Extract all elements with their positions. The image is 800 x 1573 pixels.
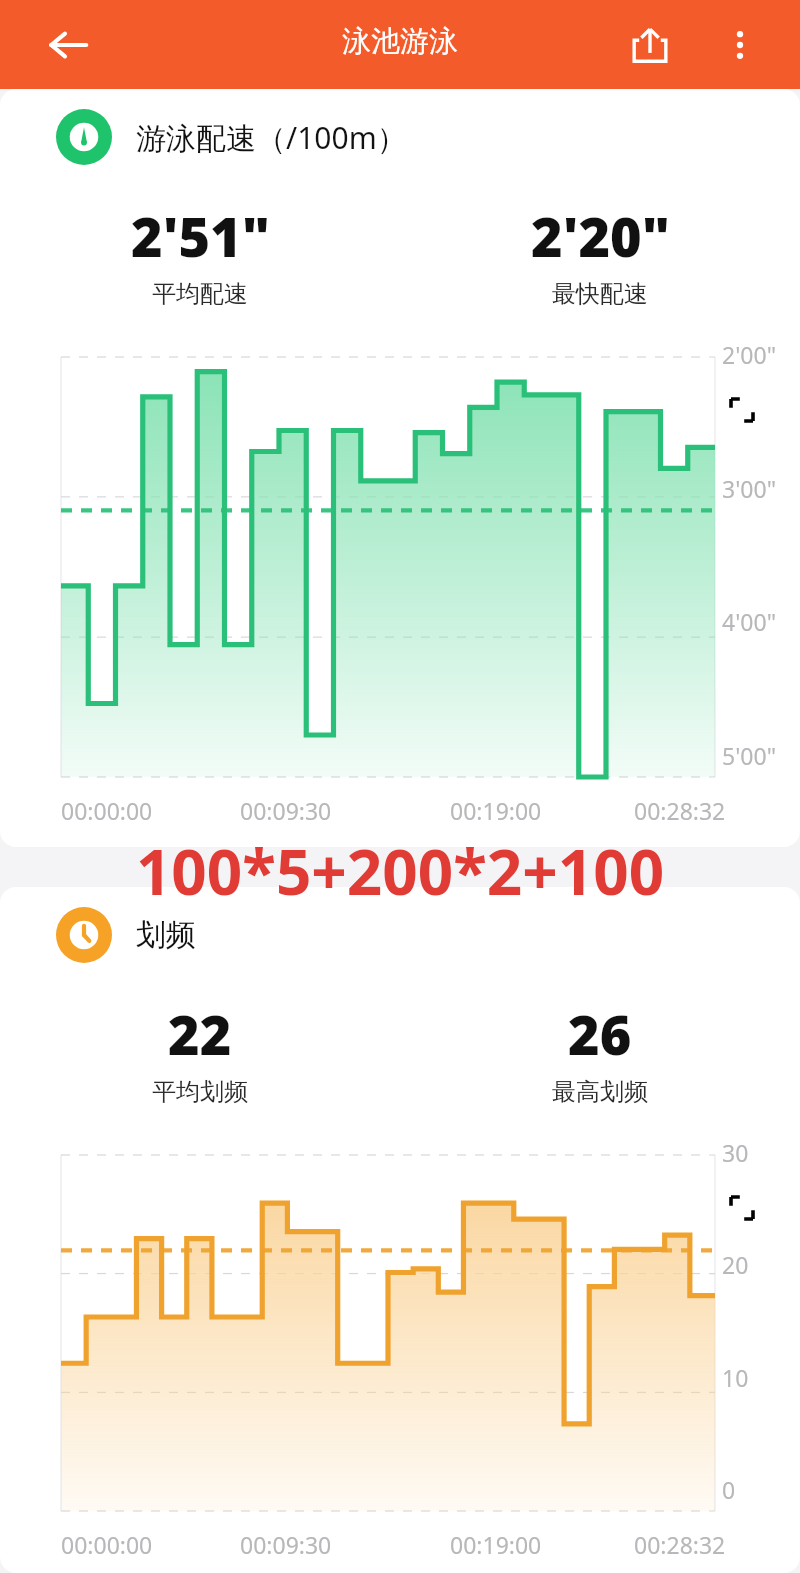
staticText: 最快配速 (552, 279, 648, 309)
staticText: 5'00" (722, 740, 777, 771)
button[interactable]: 2'20" (400, 199, 800, 309)
button[interactable]: Expand chart (716, 1182, 768, 1234)
staticText: 10 (722, 1362, 749, 1393)
staticText: 游泳配速（/100m） (136, 117, 407, 158)
staticText: 22 (168, 997, 232, 1071)
staticText: 30 (722, 1137, 749, 1168)
staticText: 20 (722, 1249, 749, 1280)
button[interactable]: 26 (400, 997, 800, 1107)
staticText: 00:28:32 (634, 1529, 726, 1555)
staticText: 4'00" (722, 606, 777, 637)
staticText: 100*5+200*2+100 (0, 829, 800, 913)
staticText: 平均配速 (152, 279, 248, 309)
staticText: 00:19:00 (450, 795, 542, 826)
button[interactable]: Back (38, 15, 98, 75)
button[interactable]: 22 (0, 997, 400, 1107)
staticText: 2'51" (131, 199, 270, 273)
staticText: 00:00:00 (61, 795, 153, 826)
button[interactable]: 2'51" (0, 199, 400, 309)
staticText: 2'00" (722, 339, 777, 370)
staticText: 2'20" (531, 199, 670, 273)
button[interactable]: More options (710, 15, 770, 75)
staticText: 00:19:00 (450, 1529, 542, 1555)
staticText: 00:28:32 (634, 795, 726, 826)
button[interactable]: 划频 (0, 907, 800, 963)
staticText: 平均划频 (152, 1077, 248, 1107)
staticText: 00:00:00 (61, 1529, 153, 1555)
button[interactable]: 游泳配速（/100m） (0, 109, 800, 165)
staticText: 00:09:30 (240, 795, 332, 826)
staticText: 最高划频 (552, 1077, 648, 1107)
staticText: 0 (722, 1474, 736, 1505)
staticText: 3'00" (722, 473, 777, 504)
button[interactable]: Share (620, 15, 680, 75)
staticText: 划频 (136, 916, 196, 954)
staticText: 26 (568, 997, 632, 1071)
button[interactable]: Expand chart (716, 384, 768, 436)
staticText: 泳池游泳 (342, 23, 458, 60)
staticText: 00:09:30 (240, 1529, 332, 1555)
